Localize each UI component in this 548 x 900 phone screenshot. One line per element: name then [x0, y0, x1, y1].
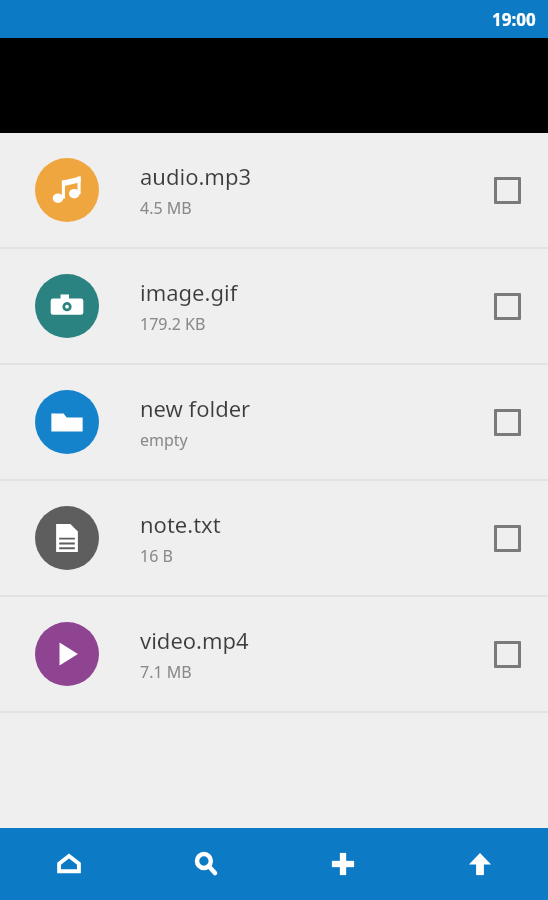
- button[interactable]: Go up: [411, 828, 548, 900]
- button[interactable]: Select image.gif: [484, 283, 530, 329]
- button[interactable]: new folder: [0, 365, 548, 479]
- staticText: 16 B: [140, 545, 173, 567]
- button[interactable]: image.gif: [0, 249, 548, 363]
- button[interactable]: video.mp4: [0, 597, 548, 711]
- staticText: audio.mp3: [140, 161, 252, 191]
- button[interactable]: audio.mp3: [0, 133, 548, 247]
- button[interactable]: note.txt: [0, 481, 548, 595]
- staticText: note.txt: [140, 509, 221, 539]
- staticText: 19:00: [492, 8, 536, 31]
- staticText: 4.5 MB: [140, 197, 192, 219]
- staticText: 179.2 KB: [140, 313, 206, 335]
- staticText: empty: [140, 429, 188, 451]
- button[interactable]: Home: [0, 828, 137, 900]
- staticText: image.gif: [140, 277, 238, 307]
- button[interactable]: Select new folder: [484, 399, 530, 445]
- staticText: video.mp4: [140, 625, 249, 655]
- button[interactable]: Add: [274, 828, 411, 900]
- button[interactable]: Search: [137, 828, 274, 900]
- staticText: 7.1 MB: [140, 661, 192, 683]
- button[interactable]: Select video.mp4: [484, 631, 530, 677]
- button[interactable]: Select audio.mp3: [484, 167, 530, 213]
- staticText: new folder: [140, 393, 251, 423]
- button[interactable]: Select note.txt: [484, 515, 530, 561]
